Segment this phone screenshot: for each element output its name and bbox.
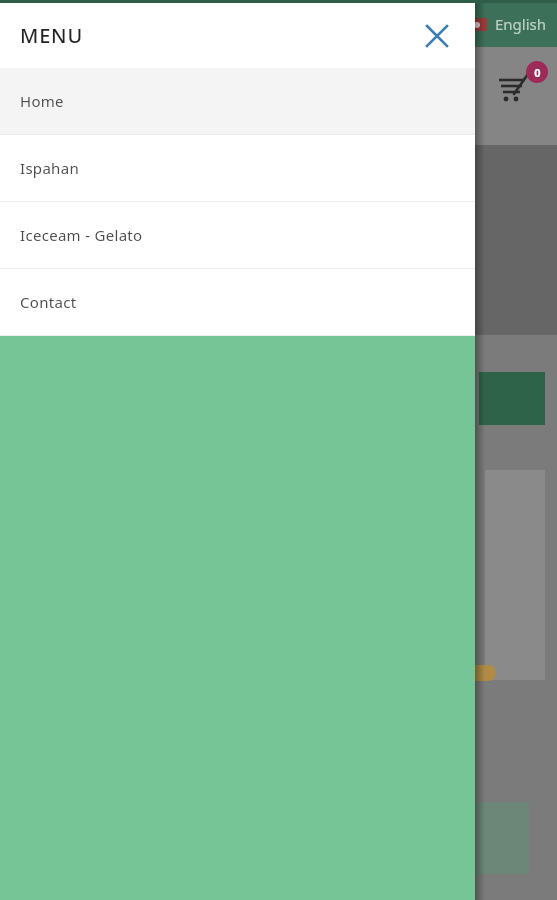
staticText: Iceceam - Gelato [20, 225, 143, 245]
staticText: MENU [20, 22, 83, 49]
staticText: Home [20, 91, 64, 111]
button[interactable]: Cart [494, 60, 544, 110]
button[interactable]: Contact [0, 269, 475, 335]
button[interactable]: English [467, 14, 547, 34]
button[interactable]: Home [0, 68, 475, 134]
staticText: 0 [534, 65, 541, 80]
staticText: English [495, 14, 547, 34]
button[interactable] [479, 372, 545, 425]
button[interactable]: Close menu [417, 16, 457, 56]
button[interactable]: Iceceam - Gelato [0, 202, 475, 268]
staticText: Contact [20, 292, 77, 312]
staticText: Ispahan [20, 158, 79, 178]
button[interactable] [477, 802, 529, 874]
button[interactable]: Ispahan [0, 135, 475, 201]
button[interactable] [485, 470, 545, 680]
